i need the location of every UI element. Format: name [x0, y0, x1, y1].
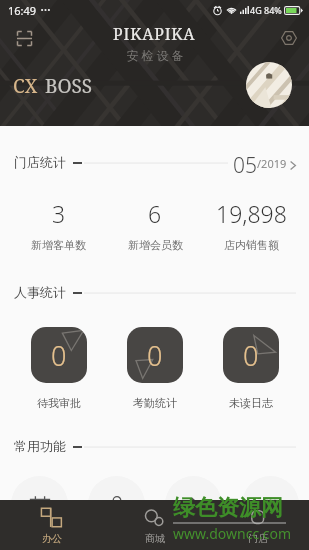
button[interactable]: 审批: [11, 476, 68, 533]
button[interactable]: 6: [107, 198, 203, 252]
staticText: 待我审批: [37, 396, 81, 410]
staticText: 0: [243, 337, 259, 374]
button[interactable]: 公告: [165, 476, 222, 533]
staticText: 办公: [42, 532, 62, 545]
button[interactable]: 考勤: [88, 476, 145, 533]
staticText: 4G: [250, 4, 262, 16]
staticText: 未读日志: [229, 396, 273, 410]
staticText: 19,898: [216, 198, 287, 229]
button[interactable]: Scan code: [13, 27, 35, 49]
button[interactable]: 未读日志: [223, 327, 279, 383]
staticText: 3: [52, 198, 66, 229]
button[interactable]: Profile avatar: [246, 62, 292, 108]
button[interactable]: 待我审批: [31, 327, 87, 383]
button[interactable]: 客户: [242, 476, 299, 533]
staticText: 0: [51, 337, 67, 374]
staticText: 安检设备: [125, 48, 185, 63]
button[interactable]: 办公: [0, 500, 103, 550]
button[interactable]: 19,898: [203, 198, 299, 252]
staticText: 门店: [248, 532, 268, 545]
button[interactable]: 考勤统计: [127, 327, 183, 383]
staticText: CX: [13, 73, 38, 99]
staticText: /2019: [257, 156, 287, 171]
staticText: 门店统计: [14, 154, 66, 170]
staticText: 0: [147, 337, 163, 374]
staticText: BOSS: [45, 73, 93, 99]
button[interactable]: 商城: [103, 500, 206, 550]
staticText: 考勤统计: [133, 396, 177, 410]
staticText: 人事统计: [14, 284, 66, 300]
staticText: 店内销售额: [224, 238, 279, 252]
button[interactable]: 05: [228, 151, 296, 173]
button[interactable]: 3: [10, 198, 107, 252]
staticText: 16:49: [8, 3, 37, 18]
staticText: 6: [148, 198, 162, 229]
staticText: 新增会员数: [128, 238, 183, 252]
button[interactable]: Settings: [278, 27, 300, 49]
staticText: 绿色资源网: [173, 494, 283, 522]
staticText: 新增客单数: [31, 238, 86, 252]
staticText: 84%: [264, 4, 282, 16]
staticText: 商城: [145, 532, 165, 545]
staticText: www.downcc.com: [173, 524, 292, 543]
staticText: PIKAPIKA: [113, 23, 196, 45]
staticText: 05: [233, 151, 257, 173]
button[interactable]: 门店: [206, 500, 309, 550]
staticText: 常用功能: [14, 438, 66, 454]
